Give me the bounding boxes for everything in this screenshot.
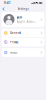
button[interactable]: General [1,29,44,37]
staticText: Sam [16,16,22,19]
button[interactable]: Sam [1,12,44,27]
staticText: General [10,31,21,35]
staticText: Settings [17,7,28,11]
button[interactable]: Focus [1,48,44,57]
button[interactable]: Back [1,6,8,12]
staticText: Privacy [10,40,18,44]
staticText: Apple Account [16,20,36,23]
button[interactable]: Privacy [1,38,44,46]
staticText: Focus [10,51,17,54]
staticText: 9:41 [4,1,11,5]
